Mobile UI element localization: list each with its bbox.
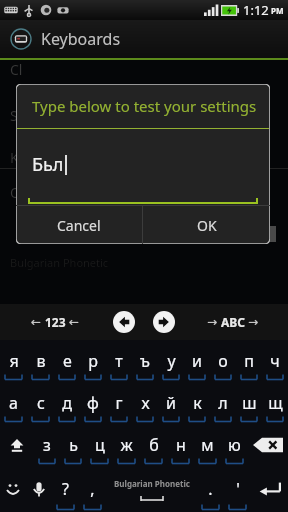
button[interactable]: м [194,424,221,466]
button[interactable]: Next [151,309,177,335]
button[interactable]: Cl [0,60,288,80]
button[interactable]: й [158,382,184,424]
button[interactable]: щ [262,382,288,424]
button[interactable]: в [27,340,54,382]
other: Enter [257,479,283,499]
button[interactable]: ъ [132,340,158,382]
button[interactable]: з [34,424,60,466]
button[interactable]: OK [143,206,270,244]
staticText: 123 [45,314,66,330]
staticText: . [208,478,213,500]
staticText: б [149,434,159,456]
staticText: р [88,350,98,372]
staticText: 1:12 [243,1,269,19]
staticText: н [176,434,186,456]
staticText: ц [95,434,105,456]
button[interactable]: ← [0,304,111,340]
staticText: Se [10,106,26,125]
button[interactable]: о [210,340,236,382]
staticText: з [43,434,51,456]
staticText: к [193,392,202,414]
staticText: д [62,392,72,414]
staticText: ч [270,350,280,372]
other: Backspace [253,436,283,454]
staticText: Bulgarian Phonetic [10,255,109,270]
button[interactable]: р [80,340,106,382]
button[interactable]: en [0,213,288,255]
staticText: KE [10,148,27,167]
staticText: Type below to test your settings [32,96,257,116]
button[interactable]: ? [52,466,79,512]
button[interactable]: Bulgarian Phonetic [106,466,197,512]
button[interactable]: н [167,424,194,466]
button[interactable]: ' [224,466,251,512]
button[interactable]: Enter [251,466,288,512]
staticText: с [37,392,45,414]
staticText: в [36,350,46,372]
staticText: ← [31,315,42,329]
button[interactable]: ч [262,340,288,382]
button[interactable]: Voice input [26,466,52,512]
button[interactable]: ш [236,382,262,424]
staticText: п [244,350,254,372]
button[interactable]: Emoji [0,466,26,512]
staticText: щ [268,392,283,414]
staticText: ← [69,315,80,329]
button[interactable]: ц [86,424,113,466]
staticText: → [207,315,218,329]
staticText: ф [87,392,99,414]
staticText: ш [242,392,257,414]
button[interactable]: ж [113,424,140,466]
button[interactable]: д [54,382,80,424]
staticText: OK [197,216,217,235]
staticText: , [90,478,95,500]
staticText: ABC [221,314,245,330]
other: Voice input [29,479,49,499]
button[interactable]: KE [0,148,288,168]
staticText: у [167,350,176,372]
button[interactable]: е [54,340,80,382]
button[interactable]: QW [0,183,288,203]
button[interactable]: . [197,466,224,512]
button[interactable]: у [158,340,184,382]
button[interactable]: ф [80,382,106,424]
other: Emoji [3,479,23,499]
staticText: л [218,392,228,414]
button[interactable]: Cancel [16,206,142,244]
button[interactable]: а [0,382,27,424]
button[interactable]: Previous [111,309,137,335]
button[interactable]: Keyboards [0,20,288,58]
staticText: я [9,350,19,372]
staticText: ? [62,478,69,500]
button[interactable]: х [132,382,158,424]
staticText: м [201,434,214,456]
button[interactable]: я [0,340,27,382]
button[interactable]: п [236,340,262,382]
staticText: Keyboards [41,28,121,50]
button[interactable]: ю [221,424,248,466]
staticText: ю [228,434,241,456]
button[interactable]: , [79,466,106,512]
staticText: en [17,224,35,244]
button[interactable]: Se [0,106,288,126]
button[interactable]: л [210,382,236,424]
button[interactable]: к [184,382,210,424]
staticText: й [166,392,176,414]
staticText: ' [236,478,240,500]
button[interactable]: и [184,340,210,382]
button[interactable]: ь [60,424,86,466]
button[interactable]: Backspace [248,424,288,466]
button[interactable]: Shift [0,424,34,466]
button[interactable]: б [140,424,167,466]
staticText: Cancel [57,216,101,235]
staticText: и [192,350,202,372]
staticText: т [115,350,123,372]
button[interactable]: т [106,340,132,382]
button[interactable]: г [106,382,132,424]
staticText: ж [120,434,133,456]
staticText: Cl [10,60,23,79]
staticText: Бьл [32,152,64,177]
staticText: е [63,350,72,372]
button[interactable]: → [177,304,288,340]
button[interactable]: с [27,382,54,424]
